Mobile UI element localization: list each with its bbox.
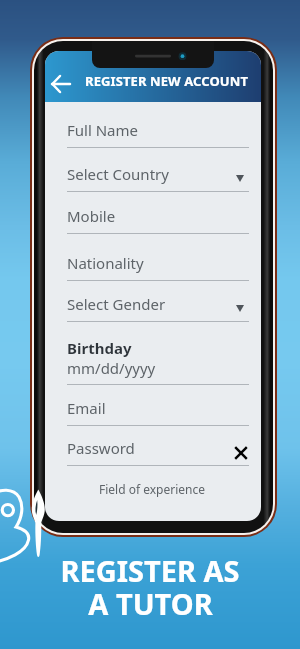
button[interactable]: Full Name [45,102,261,148]
staticText: Full Name [67,120,138,140]
staticText: Password [67,438,135,458]
staticText: A TUTOR [88,584,213,623]
staticText: REGISTER AS [60,551,240,590]
button[interactable]: Mobile [45,192,261,234]
staticText: Select Country [67,164,169,184]
staticText: Field of experience [99,481,205,497]
staticText: mm/dd/yyyy [67,358,156,378]
button[interactable]: Select Gender [45,281,261,322]
button[interactable]: Nationality [45,234,261,281]
staticText: Select Gender [67,294,166,314]
button[interactable]: Select Country [45,148,261,192]
staticText: Nationality [67,253,144,273]
staticText: Mobile [67,206,116,226]
button[interactable]: Birthday [45,322,261,385]
staticText: Birthday [67,338,132,358]
button[interactable]: Email [45,385,261,426]
staticText: Email [67,398,106,418]
button[interactable]: Password [45,426,261,466]
button[interactable]: Back [48,71,74,97]
staticText: REGISTER NEW ACCOUNT [85,72,249,90]
